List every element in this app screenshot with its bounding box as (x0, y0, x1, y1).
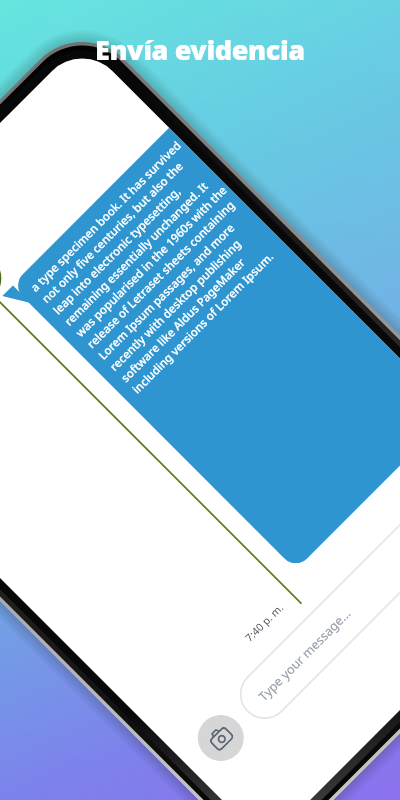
button[interactable]: Enviar mensaje (298, 662, 352, 716)
button[interactable]: Escribe tu mensaje (155, 535, 295, 665)
